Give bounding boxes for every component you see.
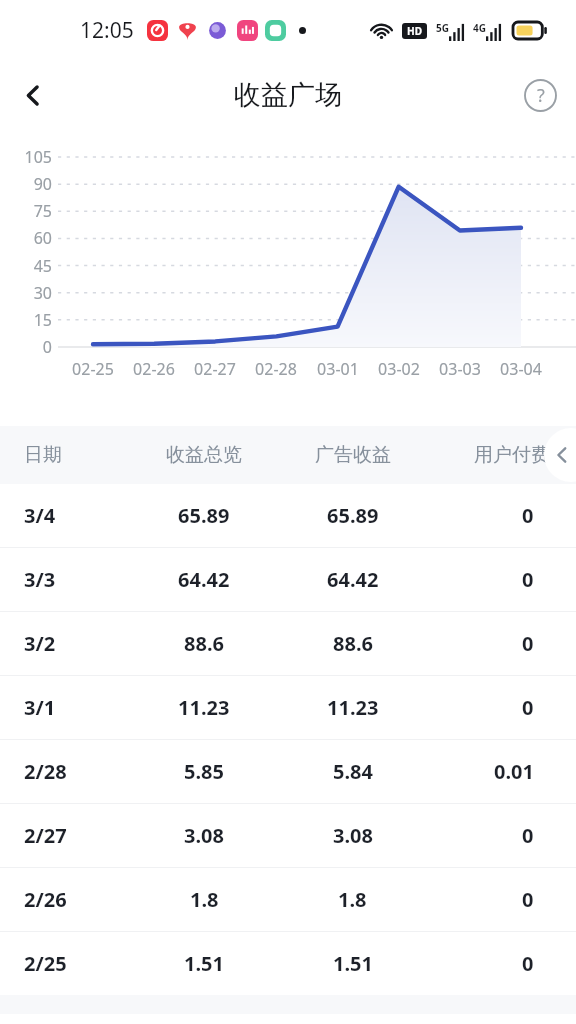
staticText: 2/28 [24,758,67,785]
staticText: 0 [522,822,534,849]
staticText: 5G [436,21,449,35]
staticText: 2/25 [24,950,67,977]
staticText: 日期 [24,443,62,467]
staticText: 60 [0,227,52,249]
staticText: 03-01 [307,358,369,380]
staticText: 45 [0,255,52,277]
staticText: 75 [0,200,52,222]
staticText: 4G [473,21,486,35]
staticText: 1.8 [338,886,367,913]
staticText: 0 [0,336,52,358]
button[interactable]: 2/27 [0,804,576,867]
staticText: 90 [0,173,52,195]
staticText: 2/27 [24,822,67,849]
staticText: 3/4 [24,502,56,529]
staticText: 收益广场 [234,78,342,112]
staticText: 1.51 [333,950,373,977]
staticText: 02-25 [62,358,124,380]
staticText: 0 [522,630,534,657]
button[interactable]: Scroll columns left [544,428,576,482]
staticText: HD [407,24,422,38]
staticText: 5.85 [184,758,224,785]
staticText: 12:05 [80,16,134,45]
staticText: 11.23 [327,694,379,721]
staticText: 3/3 [24,566,56,593]
staticText: 3/2 [24,630,56,657]
staticText: 65.89 [327,502,379,529]
button[interactable]: 2/25 [0,932,576,995]
staticText: 5.84 [333,758,373,785]
staticText: 88.6 [333,630,373,657]
staticText: 1.8 [190,886,219,913]
staticText: 2/26 [24,886,67,913]
staticText: 105 [0,146,52,168]
staticText: 3.08 [333,822,373,849]
staticText: 0 [522,502,534,529]
staticText: 用户付费 [474,443,550,467]
button[interactable]: Help [518,73,562,117]
staticText: 02-26 [123,358,185,380]
staticText: 11.23 [178,694,230,721]
button[interactable]: Back [8,71,56,119]
staticText: 65.89 [178,502,230,529]
staticText: 广告收益 [315,443,391,467]
staticText: ? [537,83,545,108]
staticText: 30 [0,282,52,304]
staticText: 3/1 [24,694,56,721]
staticText: 0 [522,566,534,593]
staticText: 88.6 [184,630,224,657]
staticText: 0 [522,694,534,721]
button[interactable]: 2/28 [0,740,576,803]
staticText: 15 [0,309,52,331]
button[interactable]: 3/1 [0,676,576,739]
staticText: 3.08 [184,822,224,849]
staticText: 02-28 [245,358,307,380]
button[interactable]: 3/3 [0,548,576,611]
staticText: 0 [522,950,534,977]
button[interactable]: 2/26 [0,868,576,931]
staticText: 收益总览 [166,443,242,467]
staticText: 03-03 [429,358,491,380]
staticText: 64.42 [327,566,379,593]
staticText: 0.01 [494,758,534,785]
staticText: 03-02 [368,358,430,380]
button[interactable]: 3/2 [0,612,576,675]
staticText: 64.42 [178,566,230,593]
staticText: 03-04 [490,358,552,380]
button[interactable]: 3/4 [0,484,576,547]
staticText: 0 [522,886,534,913]
staticText: 1.51 [184,950,224,977]
staticText: 02-27 [184,358,246,380]
